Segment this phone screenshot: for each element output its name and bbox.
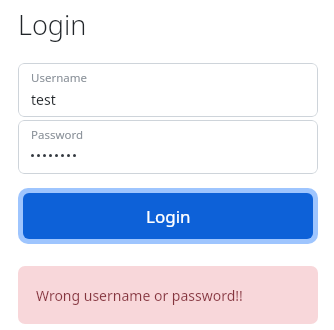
staticText: Login: [18, 6, 87, 43]
staticText: Username: [31, 70, 87, 86]
button[interactable]: Login: [18, 188, 318, 244]
staticText: Login: [146, 205, 191, 228]
staticText: Wrong username or password!!: [36, 286, 243, 305]
button[interactable]: Username field: [18, 63, 318, 117]
button[interactable]: Password field: [18, 120, 318, 174]
staticText: test: [31, 90, 56, 109]
staticText: Password: [31, 127, 84, 143]
